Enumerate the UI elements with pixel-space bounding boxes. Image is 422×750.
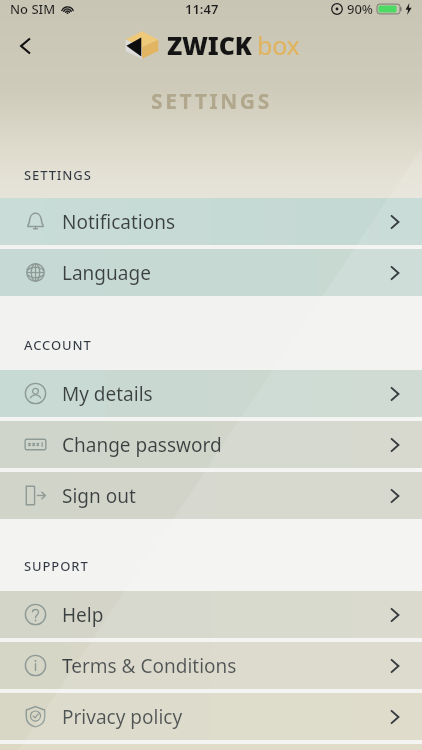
button[interactable]: Privacy policy	[0, 693, 422, 740]
staticText: SETTINGS	[151, 87, 272, 116]
button[interactable]: Help	[0, 591, 422, 638]
button[interactable]: My details	[0, 370, 422, 417]
staticText: Terms & Conditions	[62, 653, 237, 679]
staticText: Help	[62, 602, 104, 628]
button[interactable]: Language	[0, 249, 422, 296]
staticText: ACCOUNT	[24, 336, 92, 354]
staticText: 90%	[347, 0, 373, 18]
staticText: Privacy policy	[62, 704, 183, 730]
staticText: No SIM	[10, 0, 56, 18]
button[interactable]: Sign out	[0, 472, 422, 519]
staticText: 11:47	[185, 0, 219, 18]
staticText: SUPPORT	[24, 557, 89, 575]
button[interactable]: Notifications	[0, 198, 422, 245]
staticText: SETTINGS	[24, 166, 92, 184]
button[interactable]: Change password	[0, 421, 422, 468]
staticText: Language	[62, 260, 151, 286]
staticText: box	[257, 28, 300, 62]
staticText: My details	[62, 381, 153, 407]
staticText: Change password	[62, 432, 222, 458]
staticText: ZWICK	[167, 28, 252, 62]
staticText: Notifications	[62, 209, 176, 235]
button[interactable]: Terms & Conditions	[0, 642, 422, 689]
staticText: Sign out	[62, 483, 136, 509]
button[interactable]: Back	[4, 24, 48, 68]
